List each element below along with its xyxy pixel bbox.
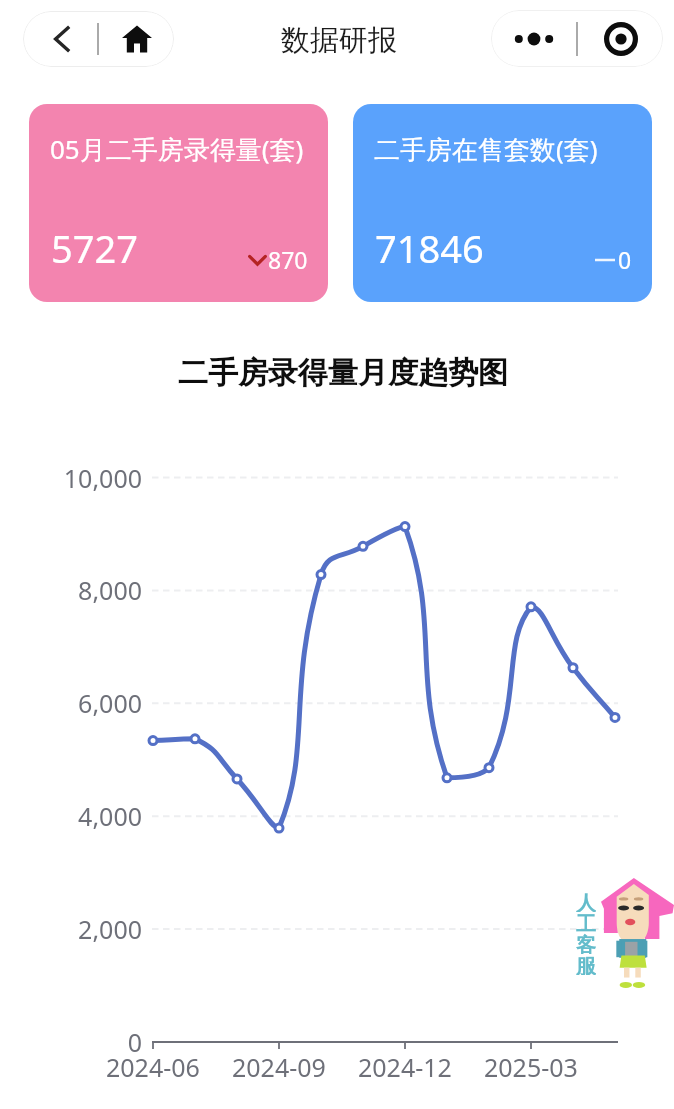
staticText: 0 (618, 244, 632, 275)
staticText: 工 (576, 912, 596, 933)
button[interactable]: Close (578, 22, 663, 56)
staticText: 6,000 (78, 686, 142, 720)
staticText: 5727 (51, 222, 138, 274)
staticText: 71846 (375, 222, 484, 274)
button[interactable]: Back (23, 26, 97, 52)
staticText: 0 (127, 1025, 142, 1059)
staticText: 二手房在售套数(套) (374, 131, 598, 167)
staticText: 2024-09 (232, 1050, 326, 1084)
staticText: 二手房录得量月度趋势图 (6, 354, 674, 392)
button[interactable]: 人工客服 (566, 872, 672, 992)
staticText: 服 (576, 954, 596, 975)
staticText: 4,000 (78, 799, 142, 833)
staticText: 870 (268, 244, 308, 275)
button[interactable]: More (491, 31, 576, 47)
button[interactable]: 05月二手房录得量(套) (29, 104, 328, 302)
staticText: 2024-06 (106, 1050, 200, 1084)
staticText: 客 (576, 933, 596, 954)
staticText: 2025-03 (484, 1050, 578, 1084)
staticText: 2,000 (78, 912, 142, 946)
staticText: 人 (576, 891, 596, 912)
staticText: 8,000 (78, 573, 142, 607)
staticText: 2024-12 (358, 1050, 452, 1084)
staticText: 05月二手房录得量(套) (50, 131, 304, 167)
button[interactable]: Home (99, 25, 174, 53)
staticText: 10,000 (63, 461, 142, 495)
button[interactable]: 二手房在售套数(套) (353, 104, 652, 302)
staticText: 数据研报 (281, 22, 397, 59)
